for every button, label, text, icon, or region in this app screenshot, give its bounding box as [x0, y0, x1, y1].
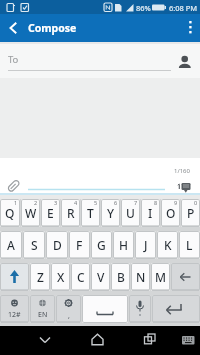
staticText: Compose [28, 21, 77, 35]
staticText: T [87, 205, 94, 221]
button[interactable]: A [0, 231, 22, 259]
staticText: 86% [136, 3, 151, 13]
staticText: U [126, 205, 135, 221]
staticText: 0 [194, 199, 198, 206]
button[interactable]: M [151, 263, 170, 291]
button[interactable] [82, 295, 128, 323]
button[interactable]: Compose [0, 14, 77, 42]
button[interactable]: N [131, 263, 150, 291]
staticText: 12# [8, 310, 21, 320]
staticText: 4 [74, 199, 78, 206]
button[interactable] [129, 295, 151, 323]
staticText: 5 [94, 199, 98, 206]
button[interactable]: U [121, 199, 140, 227]
button[interactable] [150, 326, 200, 355]
button[interactable] [50, 326, 100, 355]
button[interactable]: W [21, 199, 40, 227]
button[interactable]: Q [0, 199, 20, 227]
staticText: 8 [154, 199, 158, 206]
button[interactable]: Z [30, 263, 50, 291]
button[interactable] [171, 263, 200, 291]
staticText: C [77, 269, 85, 285]
staticText: R [67, 205, 75, 221]
staticText: E [47, 205, 54, 221]
button[interactable]: E [41, 199, 60, 227]
staticText: L [186, 237, 193, 253]
staticText: To [8, 53, 19, 66]
staticText: B [117, 269, 125, 285]
button[interactable] [152, 295, 200, 323]
button[interactable]: K [157, 231, 178, 259]
button[interactable]: L [179, 231, 200, 259]
staticText: A [7, 237, 15, 253]
button[interactable]: R [61, 199, 80, 227]
staticText: N [136, 269, 146, 285]
staticText: S [31, 237, 38, 253]
staticText: EN [38, 310, 48, 320]
button[interactable]: J [135, 231, 156, 259]
staticText: G [97, 237, 106, 253]
staticText: M [155, 269, 167, 285]
staticText: 2 [34, 199, 38, 206]
staticText: Y [107, 205, 115, 221]
staticText: 1/160 [174, 167, 190, 175]
staticText: 7 [134, 199, 138, 206]
button[interactable] [100, 326, 150, 355]
button[interactable]: S [23, 231, 45, 259]
staticText: P [187, 205, 195, 221]
button[interactable]: , [56, 295, 81, 323]
button[interactable] [0, 326, 50, 355]
button[interactable]: O [161, 199, 180, 227]
staticText: Z [37, 269, 44, 285]
button[interactable]: X [51, 263, 70, 291]
button[interactable]: P [181, 199, 200, 227]
button[interactable]: D [46, 231, 68, 259]
staticText: H [119, 237, 128, 253]
button[interactable]: EN [30, 295, 55, 323]
staticText: X [57, 269, 65, 285]
button[interactable]: To [0, 42, 200, 78]
button[interactable]: V [91, 263, 110, 291]
staticText: I [148, 205, 153, 221]
staticText: F [76, 237, 83, 253]
button[interactable]: G [91, 231, 112, 259]
staticText: 3 [54, 199, 58, 206]
staticText: 1 [14, 199, 18, 206]
staticText: K [164, 237, 172, 253]
staticText: V [97, 269, 105, 285]
staticText: Q [5, 205, 15, 221]
button[interactable]: F [69, 231, 90, 259]
button[interactable]: H [113, 231, 134, 259]
button[interactable]: I [141, 199, 160, 227]
button[interactable] [180, 14, 200, 42]
staticText: D [53, 237, 62, 253]
button[interactable]: T [81, 199, 100, 227]
staticText: O [166, 205, 176, 221]
staticText: J [144, 237, 148, 253]
staticText: W [25, 205, 37, 221]
button[interactable]: B [111, 263, 130, 291]
staticText: 6:08 PM [169, 3, 198, 13]
staticText: 6 [114, 199, 118, 206]
button[interactable]: Y [101, 199, 120, 227]
staticText: , [68, 311, 70, 321]
button[interactable]: 12# [0, 295, 29, 323]
staticText: 9 [174, 199, 178, 206]
button[interactable] [0, 263, 29, 291]
button[interactable]: C [71, 263, 90, 291]
